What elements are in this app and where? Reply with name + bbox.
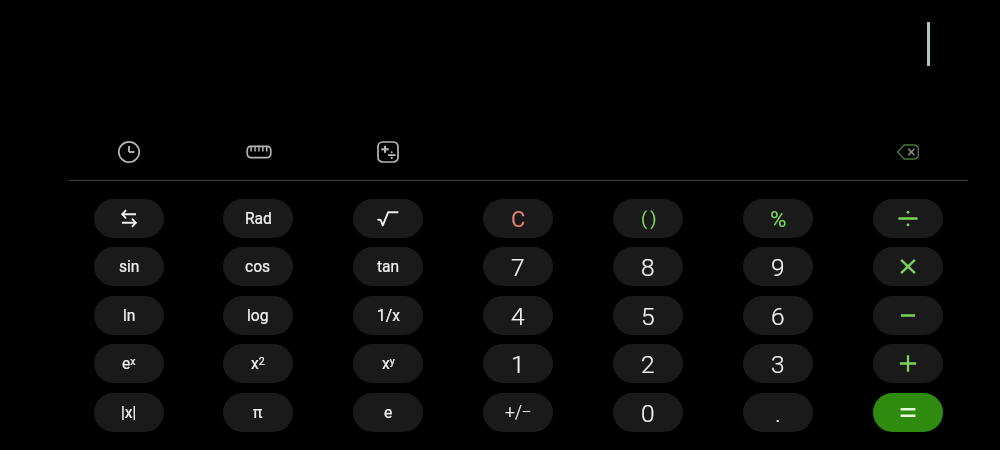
button[interactable]: Unit converter xyxy=(239,132,279,172)
button[interactable]: x2 xyxy=(223,344,293,383)
staticText: 1/x xyxy=(377,307,400,325)
button[interactable]: sin xyxy=(94,247,164,286)
button[interactable]: % xyxy=(743,199,813,238)
button[interactable]: e xyxy=(353,393,423,432)
staticText: π xyxy=(253,404,263,422)
staticText: 1 xyxy=(511,350,525,379)
button[interactable]: 6 xyxy=(743,296,813,335)
button[interactable]: 8 xyxy=(613,247,683,286)
staticText: sin xyxy=(119,258,140,276)
button[interactable]: |x| xyxy=(94,393,164,432)
button[interactable]: Swap xyxy=(94,199,164,238)
staticText: cos xyxy=(245,258,271,276)
staticText: 8 xyxy=(641,253,655,282)
staticText: log xyxy=(247,307,269,325)
staticText: x2 xyxy=(251,355,265,373)
staticText: 4 xyxy=(511,302,525,331)
staticText: . xyxy=(775,399,781,428)
button[interactable]: cos xyxy=(223,247,293,286)
button[interactable]: 2 xyxy=(613,344,683,383)
button[interactable]: +/− xyxy=(483,393,553,432)
button[interactable]: Calculator mode xyxy=(368,132,408,172)
button[interactable]: log xyxy=(223,296,293,335)
staticText: 7 xyxy=(511,253,525,282)
staticText: () xyxy=(641,208,660,229)
button[interactable]: Backspace xyxy=(888,132,928,172)
staticText: +/− xyxy=(505,402,532,423)
button[interactable]: () xyxy=(613,199,683,238)
button[interactable]: Divide xyxy=(873,199,943,238)
staticText: % xyxy=(770,206,787,232)
button[interactable]: Multiply xyxy=(873,247,943,286)
button[interactable]: History xyxy=(109,132,149,172)
button[interactable]: 5 xyxy=(613,296,683,335)
button[interactable]: 9 xyxy=(743,247,813,286)
button[interactable]: C xyxy=(483,199,553,238)
button[interactable]: π xyxy=(223,393,293,432)
button[interactable]: ln xyxy=(94,296,164,335)
staticText: 5 xyxy=(641,302,655,331)
staticText: C xyxy=(511,207,526,233)
button[interactable]: 3 xyxy=(743,344,813,383)
staticText: 9 xyxy=(771,253,785,282)
staticText: 0 xyxy=(641,399,655,428)
button[interactable]: Minus xyxy=(873,296,943,335)
button[interactable]: tan xyxy=(353,247,423,286)
button[interactable]: Rad xyxy=(223,199,293,238)
button[interactable]: . xyxy=(743,393,813,432)
button[interactable]: ex xyxy=(94,344,164,383)
staticText: tan xyxy=(377,258,400,276)
staticText: e xyxy=(384,404,393,422)
staticText: 6 xyxy=(771,302,785,331)
staticText: ex xyxy=(122,355,136,373)
staticText: |x| xyxy=(121,404,137,422)
button[interactable]: Square root xyxy=(353,199,423,238)
button[interactable]: 4 xyxy=(483,296,553,335)
button[interactable]: Equals xyxy=(873,393,943,432)
button[interactable]: Plus xyxy=(873,344,943,383)
staticText: 3 xyxy=(771,350,785,379)
button[interactable]: 1 xyxy=(483,344,553,383)
staticText: 2 xyxy=(641,350,655,379)
staticText: xy xyxy=(382,355,395,373)
button[interactable]: 1/x xyxy=(353,296,423,335)
button[interactable]: 0 xyxy=(613,393,683,432)
staticText: Rad xyxy=(245,210,272,228)
button[interactable]: 7 xyxy=(483,247,553,286)
staticText: ln xyxy=(123,307,136,325)
button[interactable]: xy xyxy=(353,344,423,383)
